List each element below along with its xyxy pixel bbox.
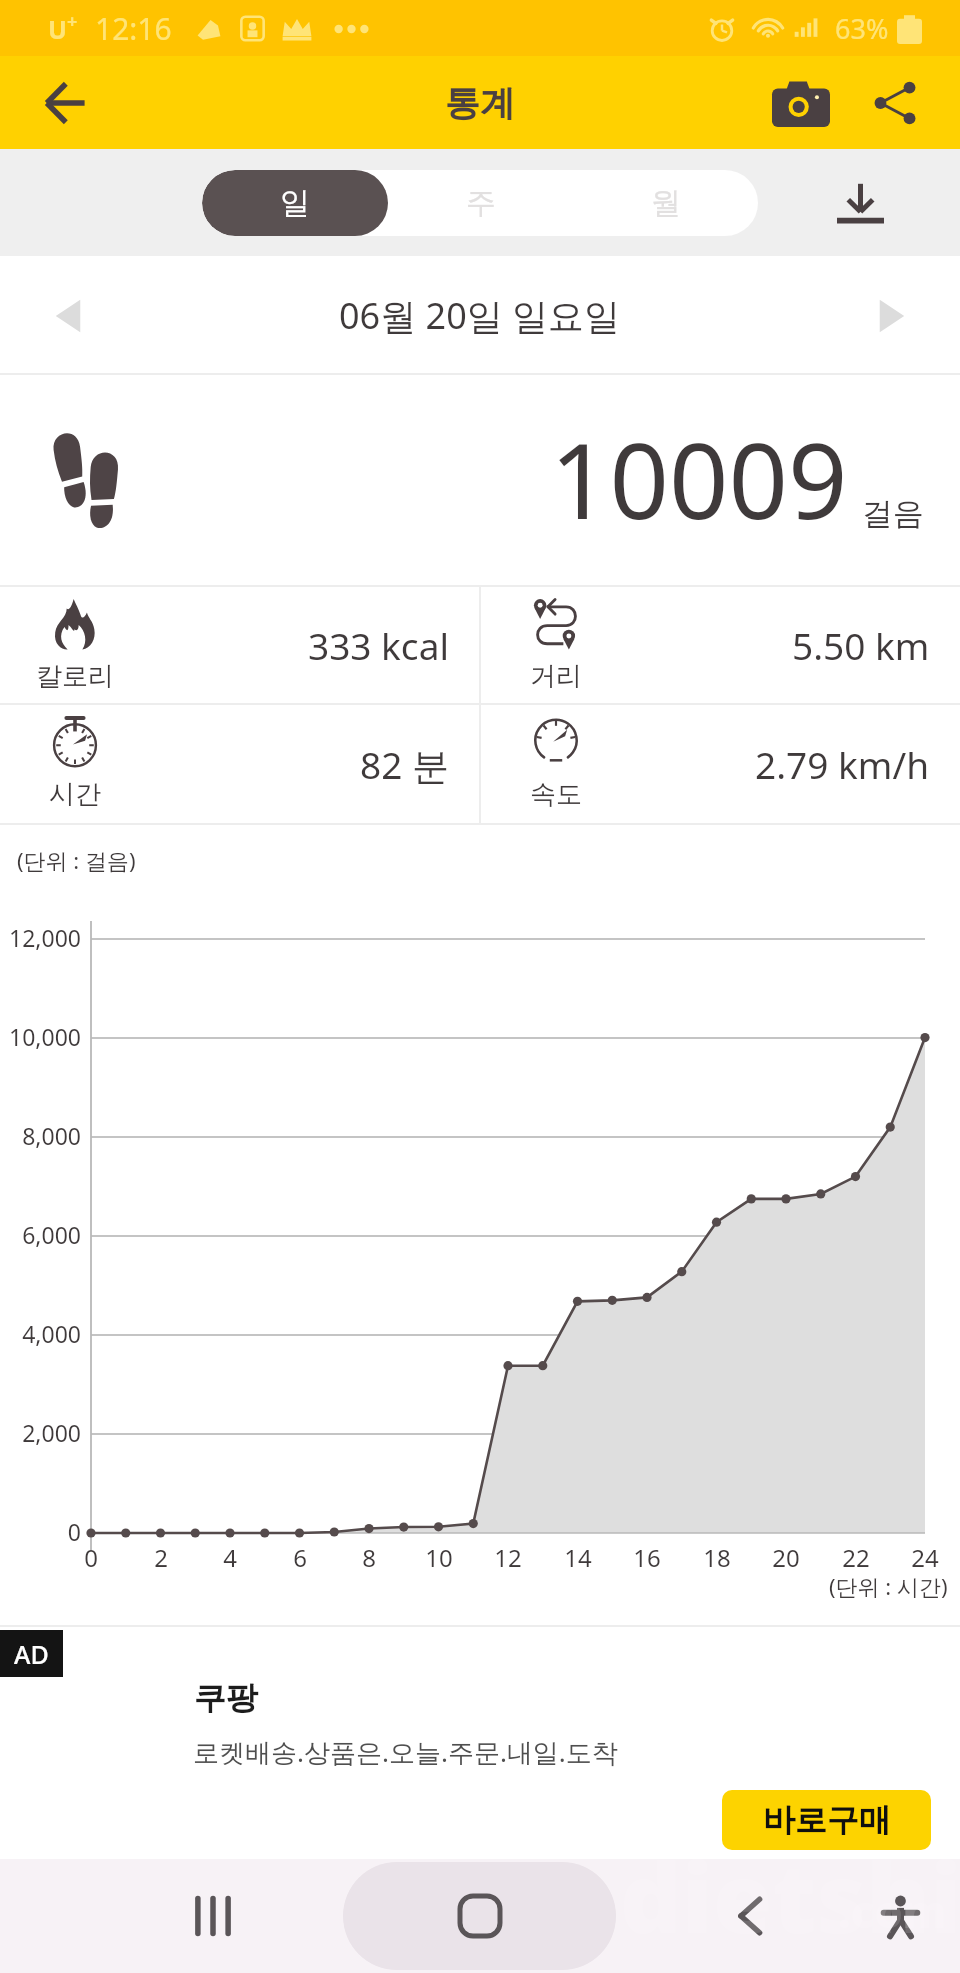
staticText: 10,000	[0, 1021, 81, 1052]
staticText: +	[67, 9, 78, 34]
staticText: 로켓배송.상품은.오늘.주문.내일.도착	[193, 1734, 618, 1770]
staticText: 24	[895, 1541, 955, 1574]
button[interactable]: 주	[388, 170, 573, 236]
staticText: 2.79 km/h	[755, 739, 930, 789]
button[interactable]: Next day	[852, 276, 932, 356]
staticText: 10009	[550, 408, 848, 550]
staticText: 20	[756, 1541, 816, 1574]
button[interactable]: 월	[573, 170, 758, 236]
button[interactable]: Share	[852, 60, 938, 146]
staticText: 12:16	[95, 8, 172, 49]
button[interactable]: Home	[343, 1862, 616, 1970]
staticText: 6,000	[0, 1219, 81, 1250]
staticText: U	[48, 12, 67, 46]
button[interactable]: Camera	[758, 60, 844, 146]
button[interactable]: 10009	[0, 375, 960, 587]
staticText: (단위 : 걸음)	[17, 845, 136, 875]
staticText: 333 kcal	[308, 620, 449, 670]
staticText: 22	[826, 1541, 886, 1574]
staticText: 2	[131, 1541, 191, 1574]
button[interactable]: Previous day	[28, 276, 108, 356]
staticText: 63%	[835, 10, 889, 47]
staticText: dietshin	[620, 1830, 960, 1961]
staticText: AD	[14, 1637, 49, 1671]
staticText: 4	[200, 1541, 260, 1574]
staticText: 14	[548, 1541, 608, 1574]
staticText: 0	[0, 1516, 81, 1547]
button[interactable]: 칼로리	[0, 587, 479, 703]
staticText: (단위 : 시간)	[829, 1571, 948, 1601]
staticText: 바로구매	[763, 1800, 891, 1840]
button[interactable]: 속도	[481, 705, 960, 823]
staticText: 칼로리	[36, 660, 114, 693]
staticText: 12,000	[0, 922, 81, 953]
staticText: 06월 20일 일요일	[339, 291, 621, 340]
staticText: 월	[651, 184, 681, 222]
staticText: 8,000	[0, 1120, 81, 1151]
button[interactable]: Back	[22, 60, 108, 146]
staticText: 5.50 km	[792, 620, 930, 670]
button[interactable]: Accessibility	[864, 1880, 936, 1952]
staticText: 8	[339, 1541, 399, 1574]
staticText: 거리	[530, 660, 582, 693]
staticText: 쿠팡	[194, 1678, 258, 1718]
staticText: 16	[617, 1541, 677, 1574]
button[interactable]: Recent apps	[177, 1880, 249, 1952]
button[interactable]: Download	[820, 163, 900, 243]
button[interactable]: 시간	[0, 705, 479, 823]
staticText: 일	[280, 184, 310, 222]
staticText: 10	[409, 1541, 469, 1574]
staticText: 통계	[445, 81, 515, 125]
staticText: 2,000	[0, 1417, 81, 1448]
staticText: 0	[61, 1541, 121, 1574]
staticText: 82 분	[360, 739, 449, 790]
staticText: 걸음	[862, 494, 924, 533]
button[interactable]: 바로구매	[722, 1790, 931, 1850]
button[interactable]: 일	[202, 170, 388, 236]
staticText: 속도	[530, 778, 582, 811]
staticText: 시간	[49, 778, 101, 811]
staticText: 6	[270, 1541, 330, 1574]
staticText: 주	[466, 184, 496, 222]
button[interactable]: Back	[714, 1880, 786, 1952]
staticText: 12	[478, 1541, 538, 1574]
staticText: 4,000	[0, 1318, 81, 1349]
staticText: 18	[687, 1541, 747, 1574]
staticText: .com	[838, 1881, 947, 1941]
button[interactable]: 거리	[481, 587, 960, 703]
